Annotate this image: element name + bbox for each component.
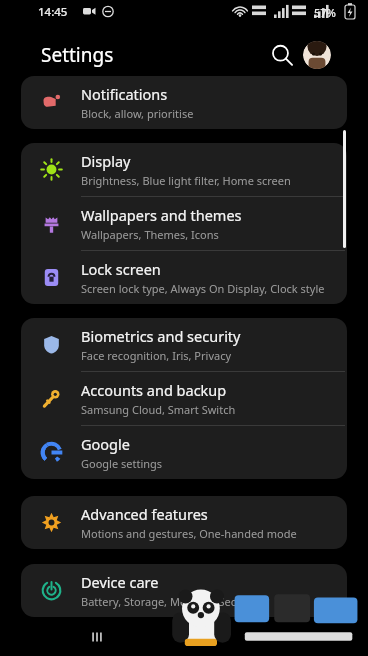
staticText: Face recognition, Iris, Privacy [81,348,232,363]
button[interactable]: Notifications [21,76,347,129]
staticText: Block, allow, prioritise [81,106,194,121]
button[interactable]: Account [303,41,331,69]
staticText: Biometrics and security [81,326,241,346]
staticText: Battery, Storage, Memory, Security [81,594,260,609]
staticText: Screen lock type, Always On Display, Clo… [81,281,325,296]
button[interactable]: Google [21,426,347,479]
staticText: Samsung Cloud, Smart Switch [81,402,236,417]
button[interactable]: Accounts and backup [21,372,347,425]
staticText: Wallpapers and themes [81,205,242,225]
button[interactable]: Recent apps [82,622,112,652]
staticText: Lock screen [81,259,161,279]
button[interactable]: Wallpapers and themes [21,197,347,250]
button[interactable]: Display [21,143,347,196]
staticText: Advanced features [81,504,208,524]
button[interactable]: Biometrics and security [21,318,347,371]
staticText: 57% [314,5,336,20]
staticText: Motions and gestures, One-handed mode [81,526,297,541]
button[interactable]: Device care [21,564,347,617]
staticText: Settings [41,42,114,68]
button[interactable]: Advanced features [21,496,347,549]
staticText: Wallpapers, Themes, Icons [81,227,219,242]
staticText: Device care [81,572,159,592]
staticText: Accounts and backup [81,380,227,400]
staticText: Notifications [81,84,168,104]
staticText: 14:45 [38,4,68,20]
staticText: Display [81,151,131,171]
button[interactable]: Search [265,38,299,72]
staticText: Google settings [81,456,163,471]
staticText: Brightness, Blue light filter, Home scre… [81,173,291,188]
button[interactable]: Lock screen [21,251,347,304]
staticText: Google [81,434,130,454]
